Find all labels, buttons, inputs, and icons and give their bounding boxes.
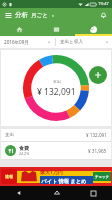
button[interactable]: Home <box>0 22 38 36</box>
button[interactable]: Calendar <box>38 22 75 36</box>
staticText: 支出と収入 <box>60 39 84 45</box>
button[interactable]: Home <box>38 186 75 200</box>
staticText: 支出 <box>5 132 15 138</box>
staticText: 19:47 <box>98 1 109 7</box>
button[interactable]: Back <box>0 186 38 200</box>
staticText: 最大1万円 <box>40 169 63 176</box>
staticText: 2016年09月 <box>4 39 29 45</box>
button[interactable]: 速報 <box>0 167 112 186</box>
button[interactable]: 食費 <box>1 142 111 159</box>
staticText: ¥ 31,965 <box>88 148 107 154</box>
button[interactable]: Menu <box>3 10 13 20</box>
staticText: 月ごと <box>31 12 49 19</box>
button[interactable]: Analysis <box>75 22 112 36</box>
staticText: ¥ 132,091 <box>86 132 107 138</box>
staticText: 分析 <box>15 11 28 19</box>
staticText: 24.2% <box>19 151 30 156</box>
button[interactable]: Add <box>89 66 107 84</box>
staticText: ¥ 132,091 <box>37 86 76 98</box>
button[interactable]: 月ごと <box>31 12 55 19</box>
button[interactable]: 2016年09月 <box>0 36 55 48</box>
button[interactable]: Recents <box>75 186 112 200</box>
staticText: バイト 情報 まとめ <box>40 177 87 184</box>
button[interactable]: 支出と収入 <box>56 36 112 48</box>
staticText: 速報 <box>5 174 13 179</box>
staticText: チェック <box>95 175 109 179</box>
staticText: 支出 <box>53 79 61 84</box>
staticText: 食費 <box>19 145 29 151</box>
button[interactable]: Notifications <box>98 10 109 21</box>
